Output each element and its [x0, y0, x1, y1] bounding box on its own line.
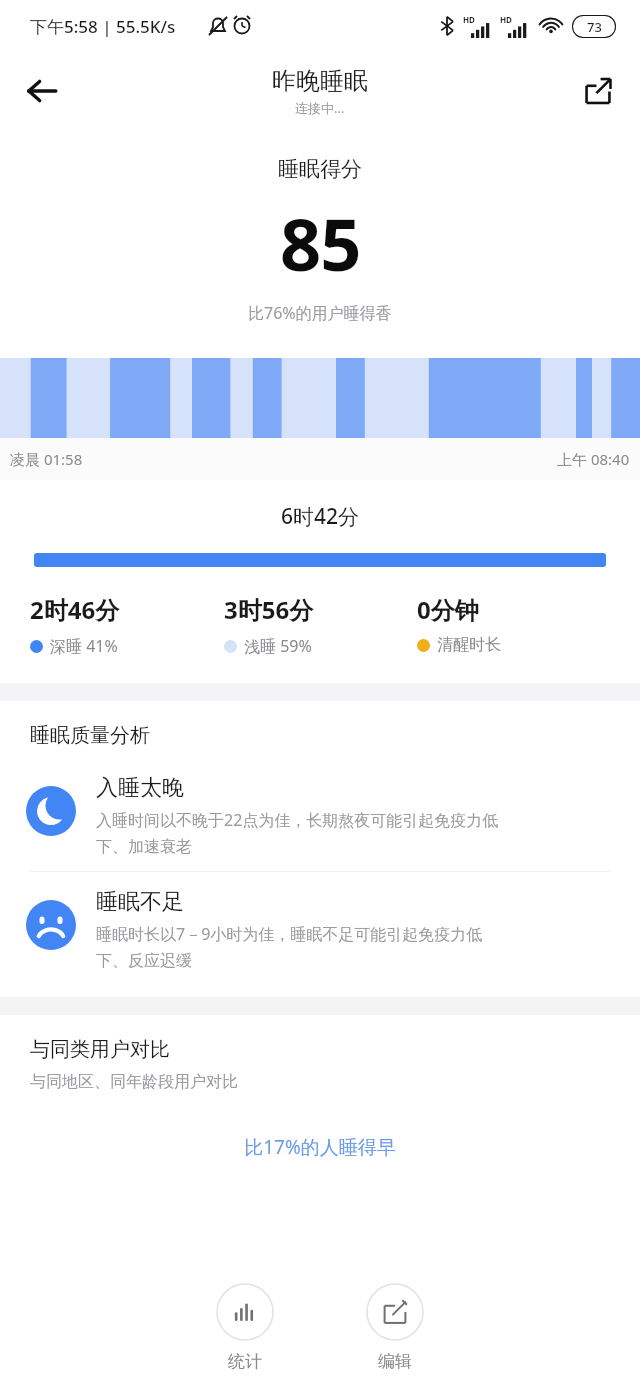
staticText: 85	[280, 194, 361, 292]
staticText: 0分钟	[417, 593, 479, 626]
staticText: 比76%的用户睡得香	[248, 302, 392, 324]
staticText: 3时56分	[224, 593, 314, 626]
staticText: 上午 08:40	[557, 449, 630, 469]
staticText: 6时42分	[0, 502, 640, 531]
staticText: HD	[463, 14, 475, 25]
button[interactable]: 入睡太晚	[0, 774, 640, 857]
staticText: 睡眠时长以7－9小时为佳，睡眠不足可能引起免疫力低 下、反应迟缓	[96, 923, 483, 971]
staticText: HD	[500, 14, 512, 25]
staticText: 2时46分	[30, 593, 120, 626]
button[interactable]: Back	[14, 63, 70, 119]
button[interactable]: 编辑	[358, 1283, 432, 1372]
staticText: 73	[587, 18, 602, 36]
staticText: 入睡太晚	[96, 774, 184, 802]
button[interactable]: Share	[570, 63, 626, 119]
staticText: 睡眠质量分析	[30, 723, 150, 748]
staticText: 与同地区、同年龄段用户对比	[30, 1072, 238, 1092]
staticText: 凌晨 01:58	[10, 449, 83, 469]
staticText: 昨晚睡眠	[272, 66, 368, 96]
staticText: 比17%的人睡得早	[0, 1134, 640, 1160]
staticText: 深睡 41%	[50, 635, 118, 657]
staticText: 入睡时间以不晚于22点为佳，长期熬夜可能引起免疫力低 下、加速衰老	[96, 809, 499, 857]
staticText: 睡眠不足	[96, 888, 184, 916]
staticText: 编辑	[378, 1351, 412, 1372]
staticText: 统计	[228, 1351, 262, 1372]
staticText: 与同类用户对比	[30, 1037, 170, 1062]
staticText: 下午5:58 | 55.5K/s	[30, 15, 176, 38]
staticText: 浅睡 59%	[244, 635, 312, 657]
button[interactable]: 统计	[208, 1283, 282, 1372]
button[interactable]: 睡眠不足	[0, 888, 640, 971]
staticText: 清醒时长	[437, 635, 501, 655]
staticText: 连接中...	[295, 99, 345, 117]
staticText: 睡眠得分	[278, 156, 362, 182]
